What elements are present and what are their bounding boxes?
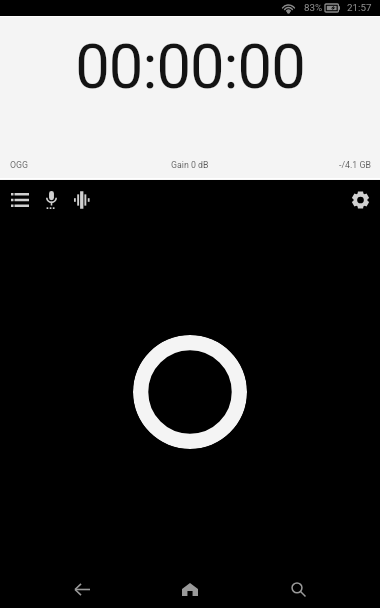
button[interactable]: Recordings list	[4, 184, 36, 216]
staticText: -/4.1 GB	[339, 160, 371, 170]
button[interactable]: Waveform	[66, 184, 98, 216]
staticText: 00:00:00	[75, 31, 305, 103]
staticText: Gain 0 dB	[171, 160, 209, 170]
button[interactable]: Settings	[344, 184, 376, 216]
staticText: 83%	[304, 2, 323, 13]
staticText: OGG	[10, 160, 29, 170]
staticText: 21:57	[347, 2, 372, 13]
button[interactable]: Record	[133, 335, 247, 449]
button[interactable]: Back	[62, 569, 102, 608]
button[interactable]: Search	[278, 569, 318, 608]
button[interactable]: Microphone source	[35, 184, 67, 216]
button[interactable]: Home	[170, 569, 210, 608]
